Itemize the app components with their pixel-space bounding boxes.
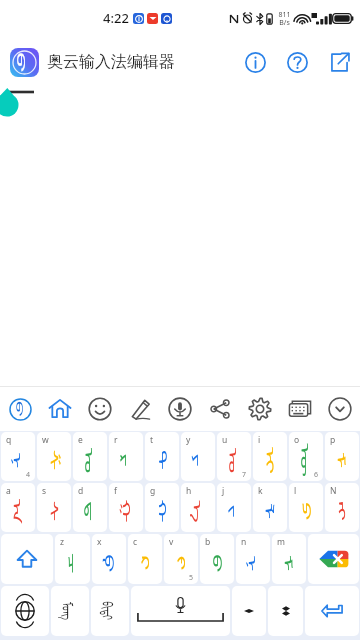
staticText: ᠩ [335, 501, 354, 522]
button[interactable]: Share [200, 389, 240, 429]
staticText: t [150, 434, 154, 446]
button[interactable]: u [217, 432, 251, 481]
button[interactable]: Enter [305, 586, 359, 636]
staticText: ᠻ [174, 555, 193, 571]
button[interactable]: g [145, 483, 179, 532]
button[interactable]: Handwriting [120, 389, 160, 429]
staticText: h [186, 485, 192, 497]
button[interactable]: f [109, 483, 143, 532]
staticText: ᠱ [47, 450, 66, 471]
staticText: p [330, 434, 336, 446]
button[interactable]: Mongolian IME [0, 389, 40, 429]
staticText: ᠡ [190, 500, 209, 523]
button[interactable]: Collapse [320, 389, 360, 429]
staticText: ᠪ [210, 554, 229, 573]
staticText: ᠵ [226, 504, 245, 519]
staticText: 6 [314, 470, 319, 480]
button[interactable]: N [325, 483, 359, 532]
button[interactable]: Switch language [1, 586, 49, 636]
staticText: 4:22 [103, 9, 129, 27]
button[interactable]: i [253, 432, 287, 481]
staticText: l [294, 485, 297, 497]
button[interactable]: Backspace [308, 534, 359, 584]
button[interactable]: Space [131, 586, 230, 636]
staticText: ᠮᠣᠩ [58, 602, 83, 620]
button[interactable]: p [325, 432, 359, 481]
button[interactable]: x [92, 534, 126, 584]
button[interactable]: k [253, 483, 287, 532]
staticText: ᠳ [83, 501, 102, 522]
button[interactable]: Settings [240, 389, 280, 429]
button[interactable]: Shift [1, 534, 53, 584]
button[interactable]: j [217, 483, 251, 532]
staticText: e [78, 434, 83, 446]
staticText: ᠰ [47, 501, 66, 522]
button[interactable]: s [37, 483, 71, 532]
button[interactable]: l [289, 483, 323, 532]
staticText: ᠪᠢᠳᠢ [98, 601, 123, 621]
button[interactable]: r [109, 432, 143, 481]
staticText: s [42, 485, 47, 497]
button[interactable]: Mongolian [51, 586, 89, 636]
button[interactable]: Keyboard [280, 389, 320, 429]
button[interactable]: Help [276, 41, 318, 83]
button[interactable]: c [128, 534, 162, 584]
staticText: w [42, 434, 49, 446]
staticText: ᠪ [13, 401, 28, 417]
button[interactable]: q [1, 432, 35, 481]
button[interactable]: h [181, 483, 215, 532]
button[interactable]: Punctuation [232, 586, 266, 636]
staticText: d [78, 485, 84, 497]
staticText: N [330, 485, 337, 497]
staticText: ᠷ [118, 453, 137, 468]
button[interactable]: Mongolian 2 [91, 586, 129, 636]
staticText: o [294, 434, 300, 446]
staticText: k [258, 485, 263, 497]
staticText: m [277, 536, 285, 548]
staticText: ᠨ [245, 555, 264, 572]
staticText: ᠨ [10, 452, 29, 469]
button[interactable]: d [73, 483, 107, 532]
staticText: b [205, 536, 211, 548]
staticText: q [6, 434, 12, 446]
staticText: c [133, 536, 138, 548]
staticText: n [241, 536, 247, 548]
staticText: ᠴ [65, 553, 84, 574]
staticText: 5 [189, 573, 194, 583]
button[interactable]: a [1, 483, 35, 532]
staticText: ᠯ [262, 503, 281, 520]
button[interactable]: Voice input [160, 389, 200, 429]
staticText: ᠤ [226, 447, 245, 474]
button[interactable]: w [37, 432, 71, 481]
staticText: x [97, 536, 102, 548]
staticText: ᠹ [102, 554, 121, 573]
staticText: i [258, 434, 261, 446]
button[interactable]: Information [234, 41, 276, 83]
staticText: ᠺ [138, 555, 157, 571]
staticText: ᠠ [10, 498, 29, 525]
staticText: ᠢ [263, 447, 282, 474]
button[interactable]: Symbols [268, 586, 303, 636]
button[interactable]: y [181, 432, 215, 481]
staticText: ᠪ [16, 52, 32, 73]
button[interactable]: o [289, 432, 323, 481]
button[interactable]: b [200, 534, 234, 584]
button[interactable]: Share [318, 41, 360, 83]
staticText: ᠮ [334, 452, 353, 469]
button[interactable]: n [236, 534, 270, 584]
button[interactable]: m [272, 534, 306, 584]
button[interactable]: v [164, 534, 198, 584]
staticText: ᠫ [299, 502, 318, 521]
staticText: ᠲ [155, 450, 174, 471]
button[interactable]: Home [40, 389, 80, 429]
button[interactable]: e [73, 432, 107, 481]
staticText: z [60, 536, 64, 548]
staticText: u [222, 434, 228, 446]
staticText: a [6, 485, 11, 497]
button[interactable]: t [145, 432, 179, 481]
staticText: y [186, 434, 191, 446]
button[interactable]: Emoji [80, 389, 120, 429]
staticText: ᠭ [119, 499, 138, 524]
staticText: r [114, 434, 118, 446]
button[interactable]: z [55, 534, 90, 584]
